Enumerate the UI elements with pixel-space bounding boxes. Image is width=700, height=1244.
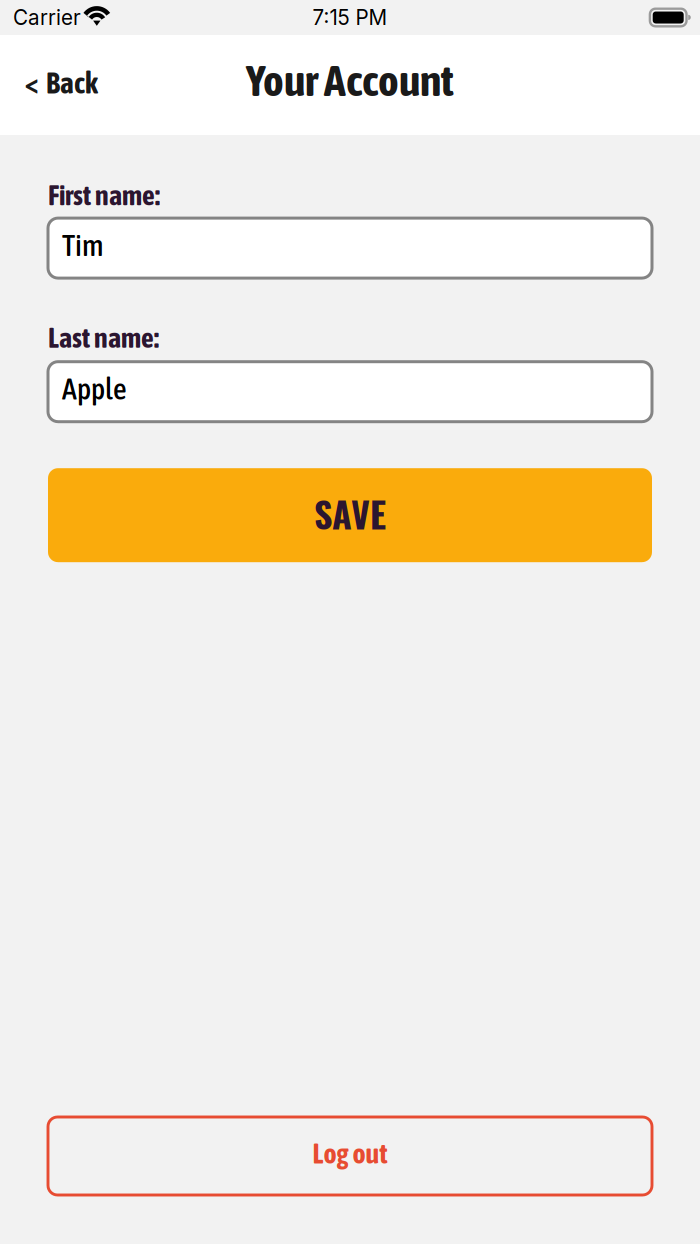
button[interactable]: Tim (48, 218, 652, 278)
button[interactable]: Log out (48, 1117, 652, 1195)
staticText: First name: (48, 179, 160, 211)
staticText: SAVE (314, 486, 386, 540)
staticText: Log out (312, 1137, 387, 1170)
staticText: Carrier (13, 5, 81, 30)
button[interactable]: Apple (48, 362, 652, 422)
staticText: Tim (62, 228, 104, 262)
staticText: Your Account (246, 55, 454, 105)
button[interactable]: SAVE (48, 468, 652, 562)
staticText: 7:15 PM (312, 5, 387, 30)
staticText: < Back (25, 66, 98, 100)
staticText: Last name: (48, 322, 159, 354)
button[interactable]: < Back (0, 35, 120, 135)
staticText: Apple (62, 371, 127, 406)
